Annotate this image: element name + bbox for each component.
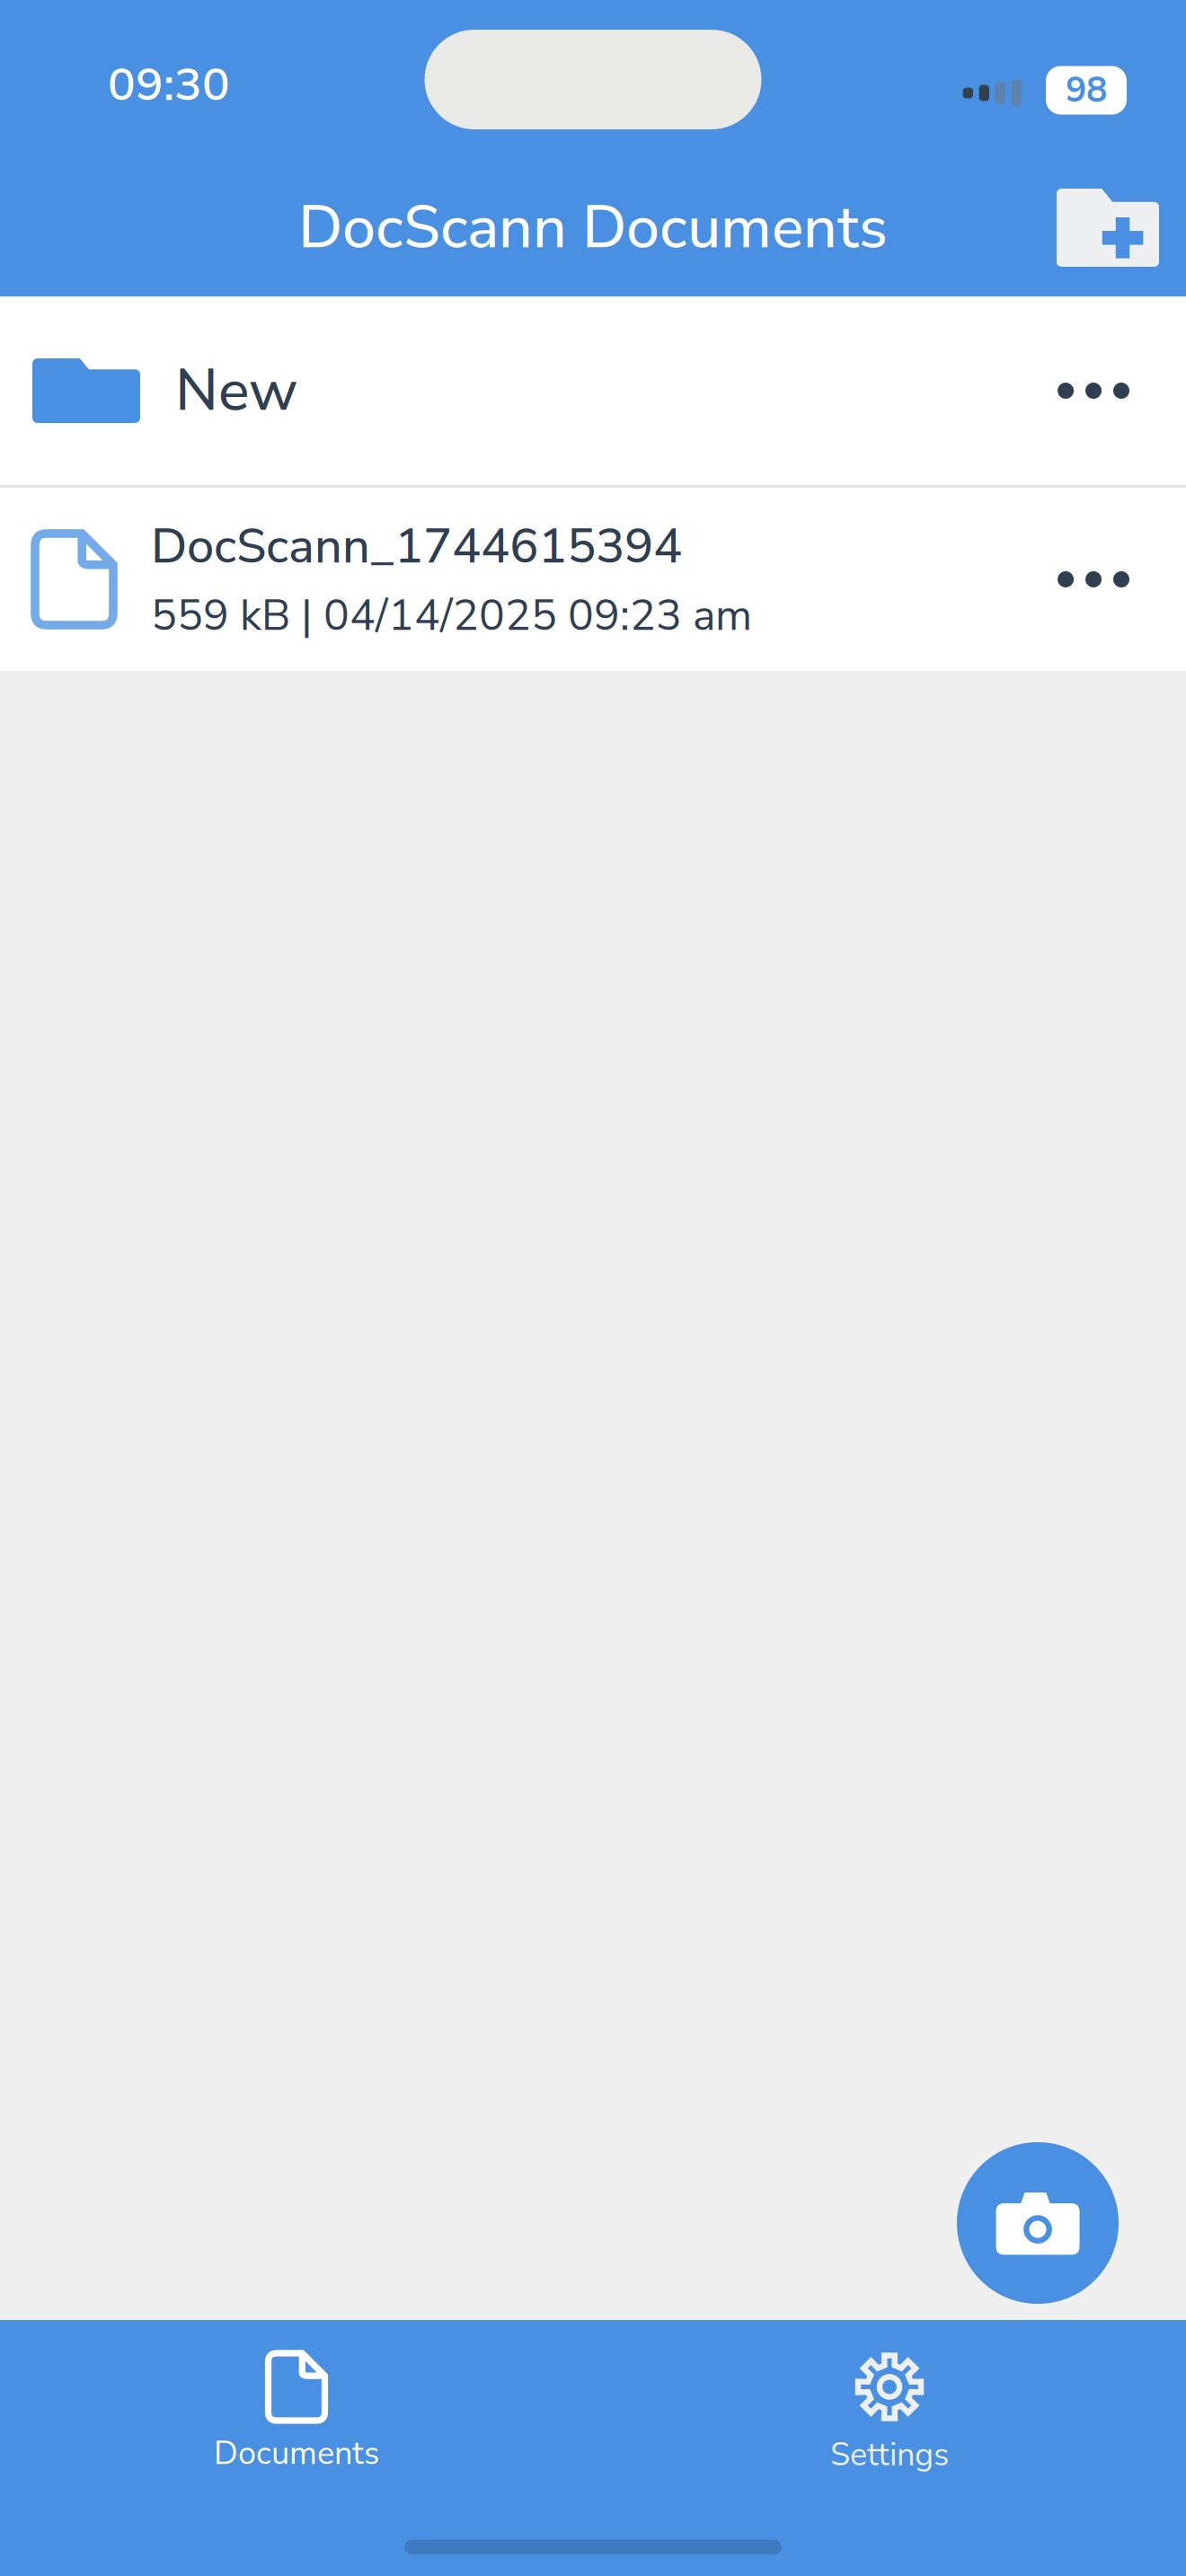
button[interactable]: Settings (593, 2336, 1186, 2492)
button[interactable]: New (0, 296, 1186, 485)
button[interactable]: DocScann_1744615394 (0, 488, 1186, 671)
staticText: 09:30 (108, 54, 230, 116)
staticText: 559 kB | 04/14/2025 09:23 am (151, 586, 752, 645)
staticText: Documents (214, 2431, 379, 2475)
staticText: 98 (1066, 66, 1107, 114)
button[interactable]: New folder (1040, 160, 1175, 295)
button[interactable]: Scan document (957, 2142, 1119, 2304)
button[interactable]: Documents (0, 2336, 593, 2492)
staticText: DocScann_1744615394 (151, 513, 682, 580)
staticText: Settings (830, 2433, 949, 2477)
staticText: New (175, 351, 297, 430)
staticText: DocScann Documents (298, 187, 888, 268)
